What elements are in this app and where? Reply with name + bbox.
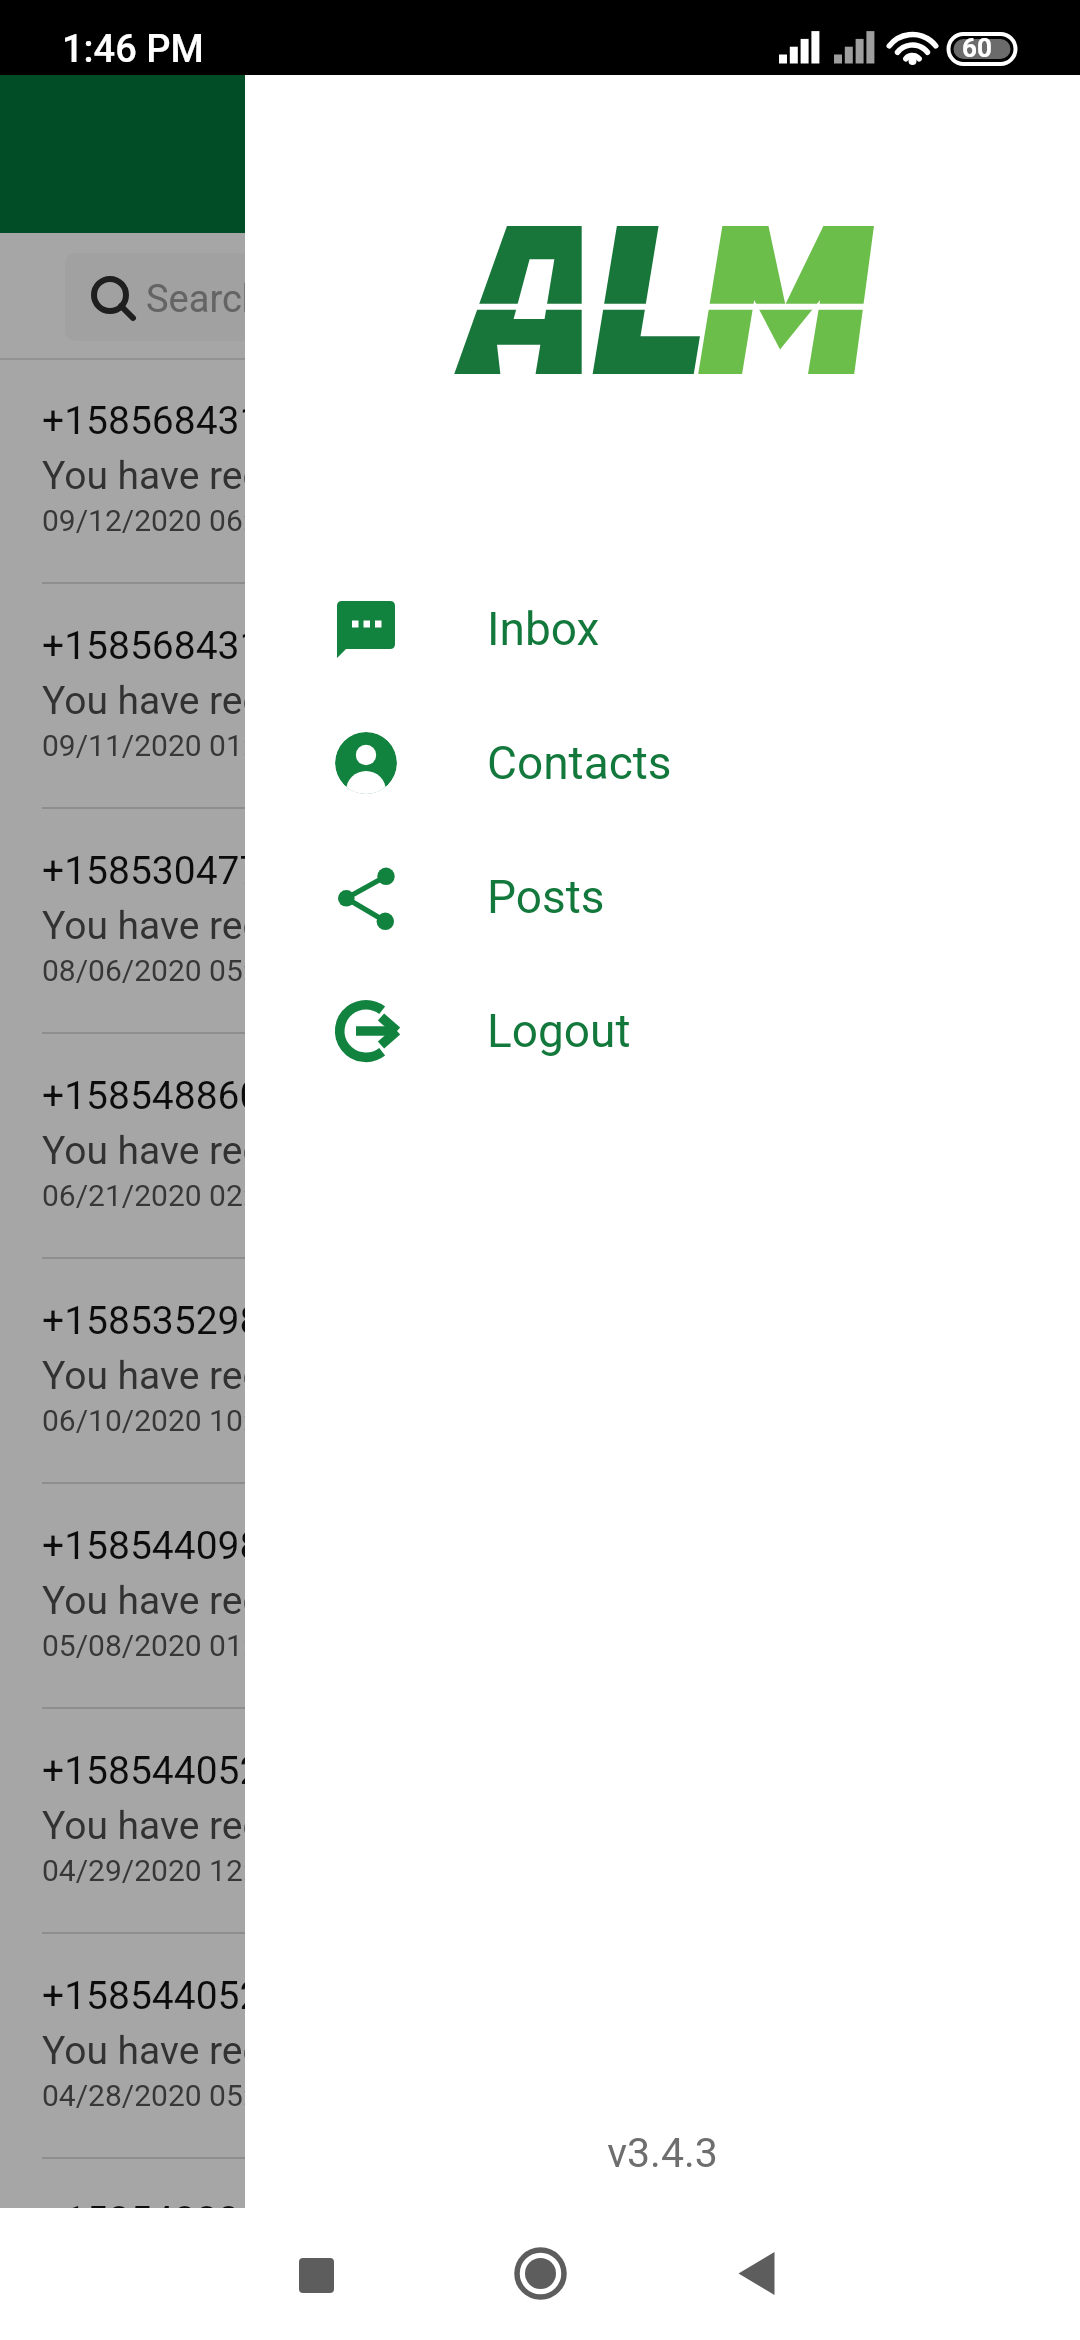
staticText: You have received a new message (42, 453, 636, 499)
staticText: 05/08/2020 01:21 (42, 1628, 284, 1663)
staticText: 1:46 PM (62, 27, 204, 72)
staticText: +15854405268 (42, 1748, 306, 1794)
staticText: +15854409835 (42, 1523, 306, 1569)
staticText: Posts (487, 870, 605, 924)
button[interactable]: +15853047755 (0, 848, 1080, 1073)
staticText: You have received a new message (42, 678, 636, 724)
staticText: 04/28/2020 05:11 (42, 2078, 284, 2113)
staticText: You have received a new message (42, 1128, 636, 1174)
staticText: +15854886015 (42, 1073, 306, 1119)
staticText: 04/29/2020 12:30 (42, 1853, 284, 1888)
staticText: +15856843175 (42, 623, 306, 669)
staticText: +15853529834 (42, 1298, 306, 1344)
staticText: 60 (962, 33, 992, 63)
button[interactable]: +15856843175 (0, 623, 1080, 848)
staticText: Inbox (487, 602, 600, 656)
staticText: Logout (487, 1004, 631, 1058)
button[interactable]: Logout (245, 964, 1080, 1098)
button[interactable]: Back (686, 2208, 827, 2340)
button[interactable]: +15854880155 (0, 2198, 1080, 2208)
staticText: +15854405268 (42, 1973, 306, 2019)
staticText: You have received a new message (42, 903, 636, 949)
button[interactable]: +15854405268 (0, 1973, 1080, 2198)
staticText: 06/10/2020 10:33 (42, 1403, 284, 1438)
staticText: Search (146, 277, 263, 322)
staticText: +15856843175 (42, 398, 306, 444)
button[interactable]: Contacts (245, 696, 1080, 830)
button[interactable]: +15854886015 (0, 1073, 1080, 1298)
button[interactable]: Posts (245, 830, 1080, 964)
button[interactable]: Home (470, 2208, 611, 2340)
button[interactable]: +15854405268 (0, 1748, 1080, 1973)
staticText: You have received a new message (42, 2253, 636, 2263)
staticText: 09/12/2020 06:52 (42, 503, 284, 538)
button[interactable]: Inbox (245, 562, 1080, 696)
staticText: You have received a new message (42, 1803, 636, 1849)
staticText: Contacts (487, 736, 672, 790)
staticText: You have received a new message (42, 1578, 636, 1624)
staticText: You have received a new message (42, 1353, 636, 1399)
staticText: v3.4.3 (245, 2129, 1080, 2177)
staticText: +15853047755 (42, 848, 306, 894)
button[interactable]: +15853529834 (0, 1298, 1080, 1523)
staticText: +15854880155 (42, 2198, 306, 2208)
staticText: 06/21/2020 02:41 (42, 1178, 284, 1213)
staticText: You have received a new message (42, 2028, 636, 2074)
button[interactable]: +15854409835 (0, 1523, 1080, 1748)
staticText: 09/11/2020 01:09 (42, 728, 284, 763)
staticText: 08/06/2020 05:00 (42, 953, 284, 988)
button[interactable]: +15856843175 (0, 398, 1080, 623)
button[interactable]: Recent apps (246, 2208, 387, 2340)
